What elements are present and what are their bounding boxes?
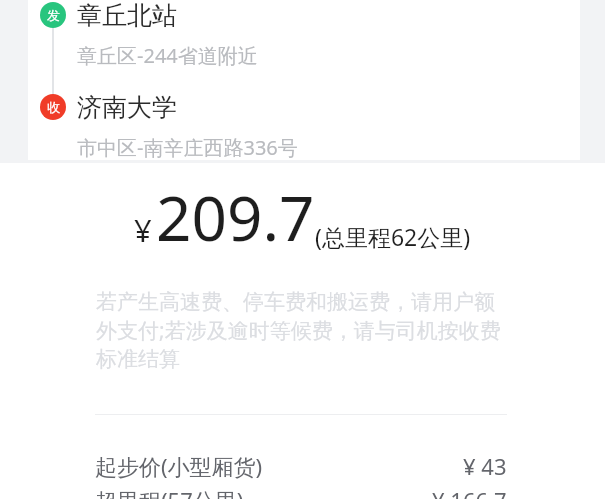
other: Dropoff location [40,94,66,120]
staticText: ¥ [134,209,152,251]
staticText: ¥ 166.7 [432,485,507,499]
other: Pickup location [40,2,66,28]
staticText: 209.7 [156,175,315,259]
staticText: 市中区-南辛庄西路336号 [77,134,298,161]
staticText: 起步价(小型厢货) [95,451,263,481]
staticText: 若产生高速费、停车费和搬运费，请用户额外支付;若涉及逾时等候费，请与司机按收费标… [96,289,513,372]
staticText: 发 [47,7,60,23]
staticText: 超里程(57公里) [95,485,244,499]
staticText: 济南大学 [77,92,177,123]
staticText: ¥ 43 [463,451,507,481]
button[interactable]: 起步价(小型厢货) [95,451,507,481]
staticText: 章丘北站 [77,0,177,31]
button[interactable]: Pickup location [28,0,580,80]
staticText: 章丘区-244省道附近 [77,42,258,69]
staticText: 收 [47,99,60,115]
button[interactable]: Dropoff location [28,86,580,160]
button[interactable]: 超里程(57公里) [95,485,507,499]
staticText: (总里程62公里) [315,221,471,252]
